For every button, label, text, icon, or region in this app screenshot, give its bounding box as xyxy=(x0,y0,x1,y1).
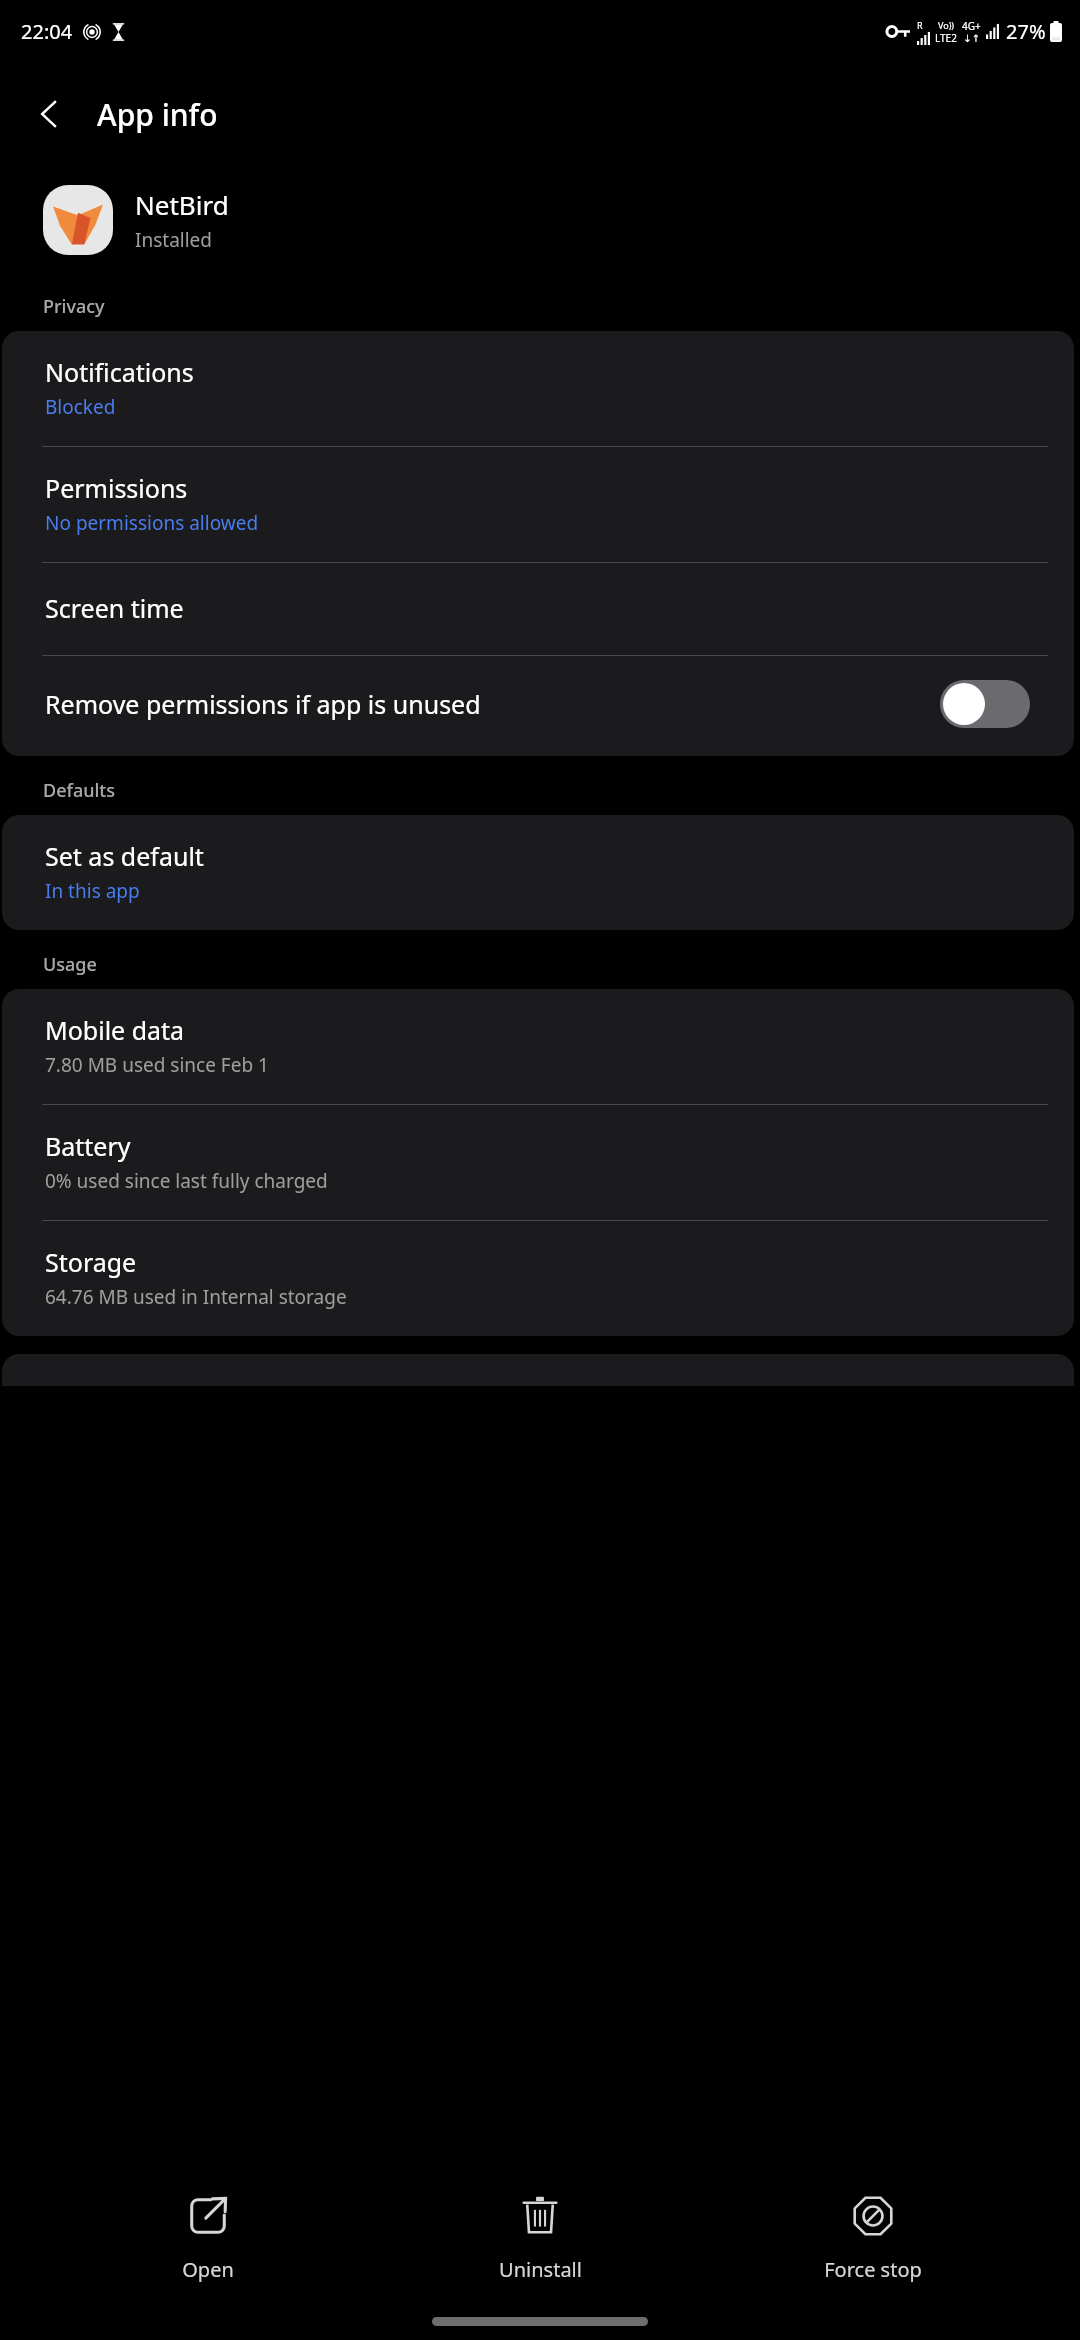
staticText: Mobile data xyxy=(45,1013,185,1047)
staticText: Battery xyxy=(45,1129,131,1163)
staticText: 4G+ xyxy=(962,19,981,33)
staticText: Remove permissions if app is unused xyxy=(45,687,928,721)
button[interactable]: Storage xyxy=(2,1221,1074,1336)
button[interactable]: Notifications xyxy=(2,331,1074,446)
staticText: Storage xyxy=(45,1245,137,1279)
staticText: LTE2 xyxy=(935,31,957,45)
staticText: R xyxy=(917,19,923,31)
staticText: 22:04 xyxy=(21,18,73,45)
button[interactable]: Open xyxy=(83,2186,333,2291)
staticText: 0% used since last fully charged xyxy=(45,1168,328,1194)
button[interactable]: Screen time xyxy=(2,563,1074,655)
staticText: Open xyxy=(182,2256,234,2283)
staticText: Force stop xyxy=(824,2256,922,2283)
staticText: Vo)) xyxy=(938,19,955,31)
staticText: Screen time xyxy=(45,591,184,625)
button[interactable]: NetBird xyxy=(0,166,1080,274)
staticText: Defaults xyxy=(43,778,115,803)
button[interactable]: Permissions xyxy=(2,447,1074,562)
staticText: 7.80 MB used since Feb 1 xyxy=(45,1052,269,1078)
staticText: Usage xyxy=(43,952,97,977)
staticText: App info xyxy=(97,94,218,135)
staticText: Installed xyxy=(135,227,213,253)
staticText: NetBird xyxy=(135,187,229,222)
staticText: Privacy xyxy=(43,294,105,319)
other: Remove permissions toggle xyxy=(940,680,1030,728)
button[interactable]: Set as default xyxy=(2,815,1074,930)
button[interactable]: Force stop xyxy=(748,2186,998,2291)
staticText: 27% xyxy=(1006,18,1046,45)
button[interactable]: Remove permissions if app is unused xyxy=(2,656,1074,756)
staticText: ↓↑ xyxy=(963,33,980,45)
staticText: Set as default xyxy=(45,839,204,873)
button[interactable]: Battery xyxy=(2,1105,1074,1220)
button[interactable]: Back xyxy=(20,85,78,143)
staticText: 64.76 MB used in Internal storage xyxy=(45,1284,347,1310)
staticText: Notifications xyxy=(45,355,194,389)
staticText: Blocked xyxy=(45,394,116,420)
staticText: Uninstall xyxy=(499,2256,582,2283)
button[interactable]: Mobile data xyxy=(2,989,1074,1104)
staticText: Permissions xyxy=(45,471,188,505)
staticText: In this app xyxy=(45,878,140,904)
button[interactable]: Uninstall xyxy=(415,2186,665,2291)
staticText: No permissions allowed xyxy=(45,510,259,536)
